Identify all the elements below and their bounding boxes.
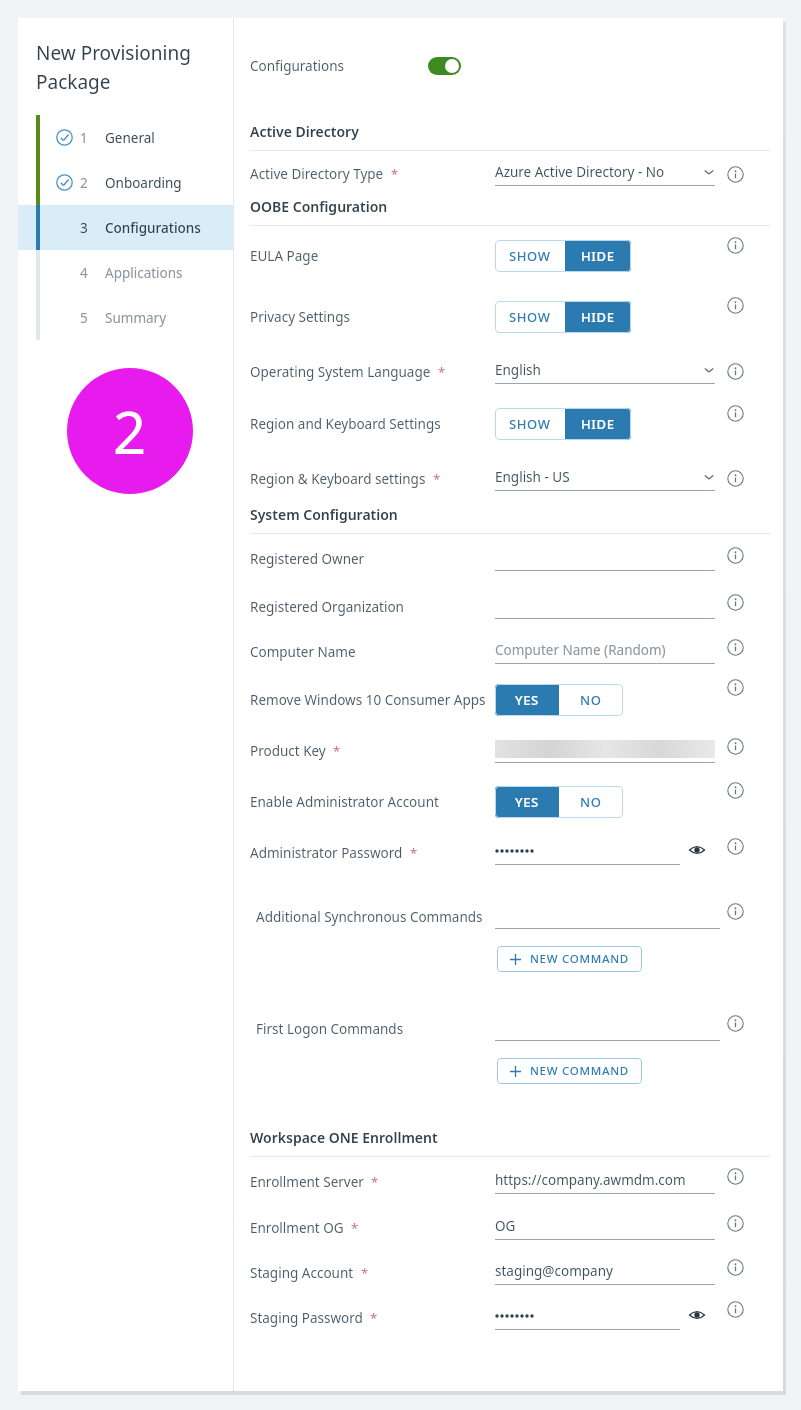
staticText: HIDE bbox=[581, 247, 615, 265]
staticText: 2 bbox=[80, 174, 88, 192]
button[interactable]: More information bbox=[727, 903, 744, 920]
staticText: Computer Name (Random) bbox=[495, 641, 666, 659]
button[interactable]: More information bbox=[727, 738, 744, 755]
button[interactable]: More information bbox=[727, 1215, 744, 1232]
staticText: Active Directory Type bbox=[250, 165, 384, 183]
staticText: Summary bbox=[105, 309, 167, 327]
staticText: Privacy Settings bbox=[250, 308, 350, 326]
staticText: Remove Windows 10 Consumer Apps bbox=[250, 691, 486, 709]
staticText: staging@company bbox=[495, 1262, 613, 1280]
staticText: Registered Owner bbox=[250, 550, 365, 568]
staticText: SHOW bbox=[509, 308, 551, 326]
staticText: 3 bbox=[80, 219, 88, 237]
staticText: * bbox=[351, 1219, 359, 1237]
staticText: SHOW bbox=[509, 247, 551, 265]
staticText: Applications bbox=[105, 264, 183, 282]
button[interactable]: More information bbox=[727, 470, 744, 487]
button[interactable]: 5 bbox=[18, 295, 233, 340]
staticText: * bbox=[438, 363, 446, 381]
button[interactable]: More information bbox=[727, 547, 744, 564]
button[interactable]: More information bbox=[727, 594, 744, 611]
button[interactable]: YES bbox=[495, 786, 559, 818]
staticText: * bbox=[391, 165, 399, 183]
button[interactable]: HIDE bbox=[565, 408, 631, 440]
staticText: HIDE bbox=[581, 308, 615, 326]
staticText: * bbox=[370, 1309, 378, 1327]
staticText: Additional Synchronous Commands bbox=[256, 908, 483, 926]
staticText: Enable Administrator Account bbox=[250, 793, 439, 811]
staticText: * bbox=[410, 844, 418, 862]
staticText: Computer Name bbox=[250, 643, 356, 661]
button[interactable]: More information bbox=[727, 405, 744, 422]
staticText: NO bbox=[580, 691, 602, 709]
staticText: 2 bbox=[113, 392, 147, 471]
button[interactable]: More information bbox=[727, 782, 744, 799]
staticText: Staging Password bbox=[250, 1309, 363, 1327]
button[interactable]: HIDE bbox=[565, 301, 631, 333]
staticText: Staging Account bbox=[250, 1264, 354, 1282]
button[interactable]: More information bbox=[727, 1168, 744, 1185]
staticText: Workspace ONE Enrollment bbox=[250, 1128, 438, 1147]
staticText: New Provisioning bbox=[36, 40, 191, 66]
staticText: YES bbox=[515, 691, 539, 709]
staticText: 5 bbox=[80, 309, 88, 327]
button[interactable]: NEW COMMAND bbox=[497, 1058, 642, 1084]
staticText: OG bbox=[495, 1217, 516, 1235]
staticText: YES bbox=[515, 793, 539, 811]
staticText: Registered Organization bbox=[250, 598, 404, 616]
button[interactable]: Show password bbox=[688, 841, 706, 859]
button[interactable]: 3 bbox=[18, 205, 233, 250]
staticText: Configurations bbox=[105, 219, 201, 237]
staticText: https://company.awmdm.com bbox=[495, 1171, 686, 1189]
staticText: Enrollment OG bbox=[250, 1219, 344, 1237]
staticText: SHOW bbox=[509, 415, 551, 433]
button[interactable]: NO bbox=[559, 684, 623, 716]
staticText: Region & Keyboard settings bbox=[250, 470, 426, 488]
staticText: Package bbox=[36, 69, 111, 95]
button[interactable]: NEW COMMAND bbox=[497, 946, 642, 972]
staticText: * bbox=[361, 1264, 369, 1282]
button[interactable]: More information bbox=[727, 838, 744, 855]
staticText: System Configuration bbox=[250, 505, 398, 524]
button[interactable]: More information bbox=[727, 297, 744, 314]
button[interactable]: More information bbox=[727, 1301, 744, 1318]
button[interactable]: SHOW bbox=[495, 301, 565, 333]
staticText: * bbox=[371, 1173, 379, 1191]
button[interactable]: NO bbox=[559, 786, 623, 818]
staticText: HIDE bbox=[581, 415, 615, 433]
staticText: 4 bbox=[80, 264, 88, 282]
staticText: English bbox=[495, 361, 541, 379]
button[interactable]: More information bbox=[727, 1259, 744, 1276]
button[interactable]: 1 bbox=[18, 115, 233, 160]
staticText: Enrollment Server bbox=[250, 1173, 364, 1191]
button[interactable]: 4 bbox=[18, 250, 233, 295]
staticText: English - US bbox=[495, 468, 570, 486]
staticText: Product Key bbox=[250, 742, 326, 760]
button[interactable]: SHOW bbox=[495, 408, 565, 440]
staticText: NO bbox=[580, 793, 602, 811]
button[interactable]: More information bbox=[727, 1015, 744, 1032]
button[interactable]: SHOW bbox=[495, 240, 565, 272]
staticText: NEW COMMAND bbox=[530, 951, 629, 967]
button[interactable]: More information bbox=[727, 237, 744, 254]
button[interactable]: More information bbox=[727, 166, 744, 183]
button[interactable]: 2 bbox=[67, 368, 193, 494]
button[interactable]: Show password bbox=[688, 1306, 706, 1324]
staticText: Configurations bbox=[250, 57, 345, 75]
staticText: Administrator Password bbox=[250, 844, 403, 862]
staticText: OOBE Configuration bbox=[250, 197, 388, 216]
button[interactable]: More information bbox=[727, 363, 744, 380]
staticText: Azure Active Directory - No Premiu bbox=[495, 163, 703, 181]
button[interactable]: HIDE bbox=[565, 240, 631, 272]
button[interactable]: Configurations enabled bbox=[428, 57, 461, 75]
staticText: 1 bbox=[80, 129, 88, 147]
staticText: Operating System Language bbox=[250, 363, 431, 381]
staticText: * bbox=[333, 742, 341, 760]
button[interactable]: More information bbox=[727, 679, 744, 696]
staticText: NEW COMMAND bbox=[530, 1063, 629, 1079]
staticText: * bbox=[433, 470, 441, 488]
button[interactable]: More information bbox=[727, 639, 744, 656]
button[interactable]: YES bbox=[495, 684, 559, 716]
button[interactable]: 2 bbox=[18, 160, 233, 205]
staticText: EULA Page bbox=[250, 247, 319, 265]
